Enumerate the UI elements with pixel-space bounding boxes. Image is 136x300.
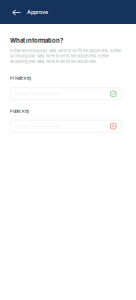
button[interactable]: Ex: 0x00000000000 — [10, 120, 122, 132]
button[interactable]: Ex: 0x00000000000 — [10, 88, 122, 100]
staticText: Before accessing your data, we're to ver… — [10, 48, 121, 64]
staticText: What information? — [10, 37, 63, 44]
staticText: Approve — [27, 9, 48, 15]
staticText: Public Key — [10, 109, 29, 114]
staticText: Ex: 0x00000000000 — [15, 124, 59, 128]
staticText: Ex: 0x00000000000 — [15, 91, 59, 96]
staticText: Private Key — [10, 76, 31, 81]
button[interactable]: Back — [10, 0, 23, 24]
